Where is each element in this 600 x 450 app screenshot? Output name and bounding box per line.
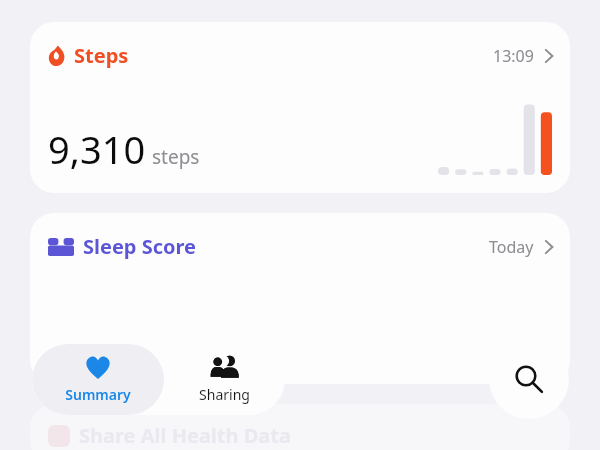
button[interactable]: Sharing [164, 344, 285, 415]
button[interactable]: Share All Health Data [30, 404, 570, 450]
button[interactable]: Sleep Score [30, 213, 570, 384]
staticText: steps [152, 144, 200, 170]
staticText: Share All Health Data [79, 422, 291, 449]
staticText: Sharing [199, 385, 250, 404]
staticText: 9,310 [48, 123, 146, 175]
staticText: Steps [74, 42, 129, 69]
staticText: Today [489, 236, 534, 258]
button[interactable]: Search [489, 339, 569, 419]
button[interactable]: Steps [30, 22, 570, 193]
staticText: 13:09 [493, 45, 534, 67]
button[interactable]: Summary [32, 344, 164, 415]
staticText: Sleep Score [83, 233, 197, 260]
staticText: Summary [65, 385, 131, 404]
